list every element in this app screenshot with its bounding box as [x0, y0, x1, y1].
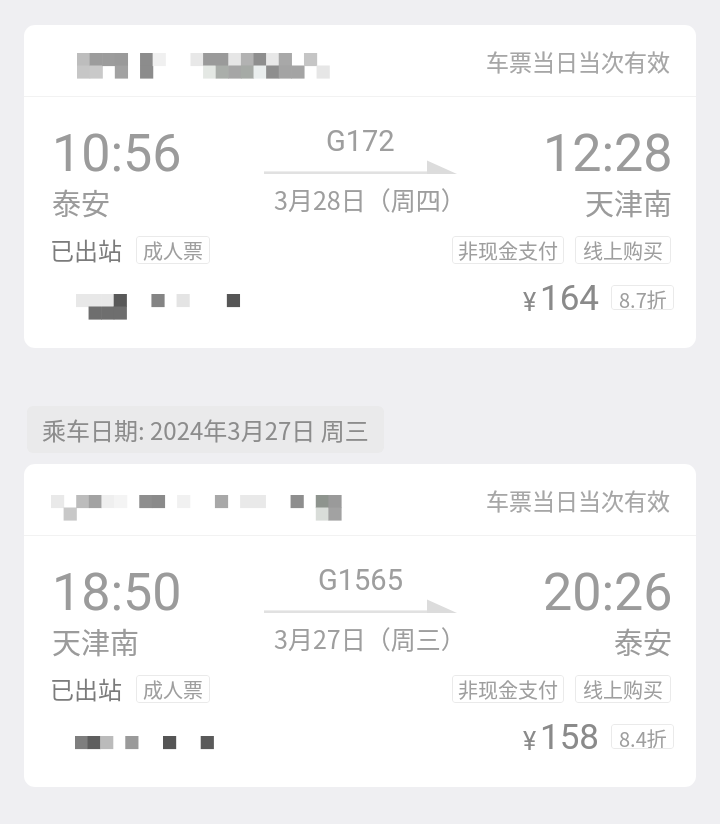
staticText: 成人票: [143, 236, 203, 264]
staticText: 成人票: [143, 675, 203, 703]
staticText: G172: [326, 124, 395, 158]
staticText: 3月27日（周三）: [274, 620, 466, 656]
staticText: 3月28日（周四）: [274, 181, 466, 217]
staticText: 非现金支付: [458, 236, 558, 264]
staticText: 8.7折: [619, 285, 667, 310]
button[interactable]: 成人票: [136, 236, 210, 264]
button[interactable]: 车票当日当次有效: [24, 464, 696, 787]
staticText: 乘车日期: 2024年3月27日 周三: [42, 412, 369, 447]
staticText: 非现金支付: [458, 675, 558, 703]
staticText: 车票当日当次有效: [486, 483, 670, 516]
staticText: ¥: [523, 727, 537, 756]
button[interactable]: 线上购买: [575, 236, 671, 264]
staticText: 158: [540, 717, 600, 758]
button[interactable]: 8.4折: [611, 724, 674, 749]
staticText: 8.4折: [619, 724, 667, 749]
staticText: 164: [540, 278, 600, 319]
button[interactable]: 线上购买: [575, 675, 671, 703]
staticText: 线上购买: [583, 675, 663, 703]
staticText: 车票当日当次有效: [486, 44, 670, 77]
staticText: 10:56: [52, 123, 182, 184]
button[interactable]: 乘车日期: 2024年3月27日 周三: [27, 406, 384, 453]
button[interactable]: 成人票: [136, 675, 210, 703]
staticText: 已出站: [50, 232, 122, 267]
staticText: 泰安: [52, 181, 111, 223]
button[interactable]: 8.7折: [611, 285, 674, 310]
button[interactable]: 非现金支付: [452, 675, 564, 703]
staticText: 12:28: [543, 123, 673, 184]
staticText: 已出站: [50, 671, 122, 706]
staticText: 天津南: [52, 620, 140, 662]
staticText: 20:26: [543, 562, 673, 623]
staticText: 天津南: [585, 181, 673, 223]
staticText: 18:50: [52, 562, 182, 623]
staticText: G1565: [318, 563, 403, 597]
staticText: ¥: [523, 288, 537, 317]
staticText: 泰安: [614, 620, 673, 662]
button[interactable]: 非现金支付: [452, 236, 564, 264]
staticText: 线上购买: [583, 236, 663, 264]
button[interactable]: 车票当日当次有效: [24, 25, 696, 348]
